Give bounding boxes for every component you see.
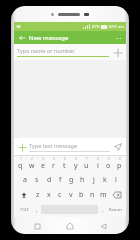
button[interactable]: Shift	[15, 187, 32, 202]
staticText: c	[58, 190, 62, 200]
button[interactable]: s	[31, 172, 43, 187]
staticText: 0	[119, 157, 121, 161]
staticText: u	[84, 161, 89, 171]
staticText: p	[117, 161, 122, 171]
staticText: Return	[109, 207, 122, 212]
staticText: New message	[29, 34, 69, 42]
staticText: ,	[36, 206, 38, 214]
staticText: x	[47, 190, 51, 200]
staticText: .	[102, 206, 104, 214]
staticText: e	[41, 161, 45, 171]
button[interactable]: Recents	[30, 219, 44, 233]
staticText: o	[106, 161, 111, 171]
button[interactable]: v	[65, 187, 76, 202]
staticText: 1	[20, 157, 22, 161]
button[interactable]: Send	[112, 141, 123, 152]
staticText: Type name or number	[17, 47, 75, 54]
staticText: f	[59, 175, 62, 185]
button[interactable]: n	[87, 187, 98, 202]
button[interactable]: x	[43, 187, 54, 202]
button[interactable]: 1	[15, 156, 26, 172]
button[interactable]: Add attachment	[17, 142, 27, 152]
button[interactable]: ?123	[16, 203, 32, 216]
staticText: 3	[42, 157, 44, 161]
button[interactable]: Home	[63, 219, 77, 233]
staticText: s	[35, 175, 39, 185]
staticText: 2	[31, 157, 33, 161]
button[interactable]: 7	[81, 156, 92, 172]
button[interactable]: Back	[96, 219, 110, 233]
staticText: m	[100, 190, 107, 200]
staticText: q	[18, 161, 23, 171]
staticText: v	[69, 190, 73, 200]
button[interactable]: f	[55, 172, 66, 187]
button[interactable]: 2	[26, 156, 37, 172]
button[interactable]: a	[19, 172, 31, 187]
button[interactable]: c	[54, 187, 65, 202]
staticText: h	[80, 175, 85, 185]
staticText: t	[63, 161, 66, 171]
staticText: w	[29, 161, 35, 171]
staticText: j	[93, 175, 95, 185]
staticText: 8	[97, 157, 99, 161]
staticText: 87%	[92, 24, 100, 29]
staticText: 7	[86, 157, 88, 161]
staticText: 5	[64, 157, 66, 161]
button[interactable]: 5	[59, 156, 70, 172]
button[interactable]: .	[98, 203, 107, 216]
staticText: Type text message	[29, 142, 78, 149]
button[interactable]: k	[99, 172, 110, 187]
button[interactable]: More options	[113, 33, 123, 43]
staticText: ?123	[20, 207, 29, 212]
staticText: k	[103, 175, 107, 185]
button[interactable]: d	[43, 172, 55, 187]
staticText: 9	[108, 157, 110, 161]
button[interactable]: Backspace	[109, 187, 125, 202]
button[interactable]: l	[110, 172, 121, 187]
staticText: l	[115, 175, 117, 185]
button[interactable]: Return	[107, 203, 124, 216]
button[interactable]: 8	[92, 156, 103, 172]
staticText: y	[74, 161, 78, 171]
button[interactable]: z	[32, 187, 43, 202]
staticText: i	[97, 161, 99, 171]
button[interactable]: 6	[70, 156, 81, 172]
staticText: a	[23, 175, 27, 185]
button[interactable]: 9	[103, 156, 114, 172]
staticText: 8:01 am	[109, 24, 124, 29]
button[interactable]: ,	[32, 203, 41, 216]
button[interactable]: g	[66, 172, 77, 187]
button[interactable]: m	[98, 187, 109, 202]
staticText: d	[47, 175, 52, 185]
staticText: b	[79, 190, 84, 200]
button[interactable]: j	[88, 172, 99, 187]
staticText: 6	[75, 157, 77, 161]
button[interactable]: Add contact	[112, 47, 123, 58]
button[interactable]: 4	[48, 156, 59, 172]
button[interactable]: Back	[17, 33, 27, 43]
staticText: 4	[53, 157, 55, 161]
button[interactable]: 0	[114, 156, 125, 172]
staticText: g	[69, 175, 74, 185]
button[interactable]: b	[76, 187, 87, 202]
staticText: z	[36, 190, 40, 200]
staticText: r	[52, 161, 55, 171]
button[interactable]: h	[77, 172, 88, 187]
button[interactable]: 3	[37, 156, 48, 172]
staticText: n	[90, 190, 95, 200]
